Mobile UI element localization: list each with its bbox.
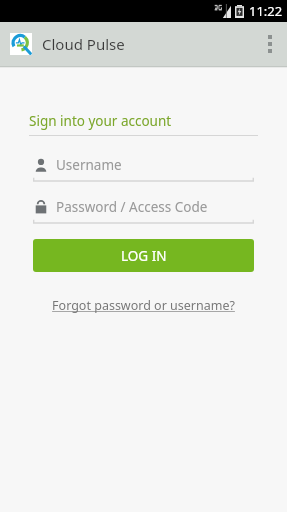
staticText: 11:22 (249, 2, 283, 20)
button[interactable]: More options (253, 22, 287, 66)
staticText: Forgot password or username? (52, 297, 235, 314)
staticText: Password / Access Code (56, 198, 208, 216)
button[interactable]: Forgot password or username? (46, 294, 241, 317)
button[interactable]: Username (33, 154, 254, 182)
staticText: Sign into your account (29, 112, 172, 130)
button[interactable]: Password / Access Code (33, 196, 254, 224)
staticText: LOG IN (121, 247, 167, 265)
staticText: Cloud Pulse (42, 34, 125, 54)
staticText: Username (56, 156, 122, 174)
button[interactable]: LOG IN (33, 239, 254, 272)
